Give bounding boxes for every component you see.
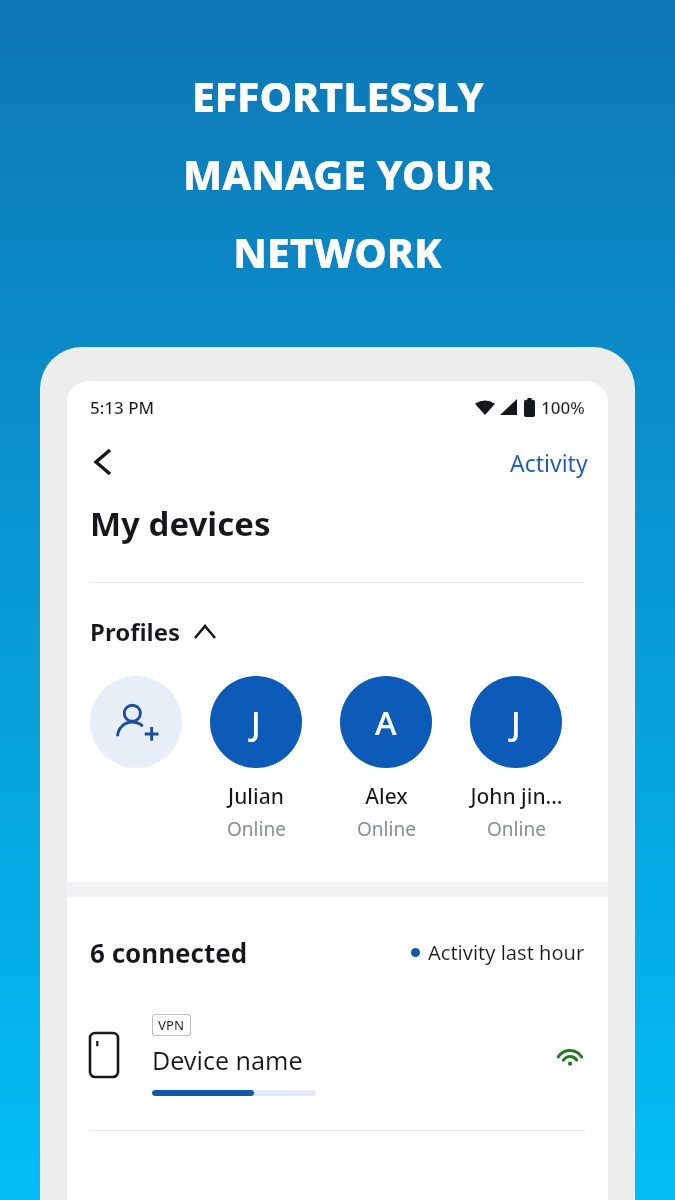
staticText: EFFORTLESSLY xyxy=(192,68,484,124)
staticText: MANAGE YOUR xyxy=(183,146,493,202)
button[interactable]: VPN xyxy=(67,1014,608,1131)
staticText: Online xyxy=(487,816,546,842)
staticText: VPN xyxy=(158,1016,185,1034)
button[interactable]: Add profile xyxy=(88,676,184,768)
button[interactable]: J xyxy=(198,676,314,842)
staticText: Julian xyxy=(228,782,284,811)
button[interactable]: Back xyxy=(81,440,125,484)
button[interactable]: Profiles xyxy=(90,615,215,648)
button[interactable]: Activity xyxy=(504,441,594,484)
staticText: NETWORK xyxy=(233,224,442,280)
button[interactable]: J xyxy=(458,676,574,842)
staticText: J xyxy=(251,700,261,745)
staticText: 100% xyxy=(541,396,585,419)
button[interactable]: A xyxy=(328,676,444,842)
staticText: Online xyxy=(227,816,286,842)
staticText: 5:13 PM xyxy=(90,396,155,419)
staticText: 6 connected xyxy=(90,935,248,970)
staticText: Device name xyxy=(152,1043,303,1077)
staticText: My devices xyxy=(90,501,271,546)
staticText: Online xyxy=(357,816,416,842)
staticText: A xyxy=(375,700,397,745)
staticText: J xyxy=(511,700,521,745)
staticText: Activity xyxy=(510,447,588,478)
staticText: Profiles xyxy=(90,615,181,648)
staticText: John jin… xyxy=(470,782,563,811)
staticText: Alex xyxy=(365,782,408,811)
staticText: Activity last hour xyxy=(428,939,585,966)
